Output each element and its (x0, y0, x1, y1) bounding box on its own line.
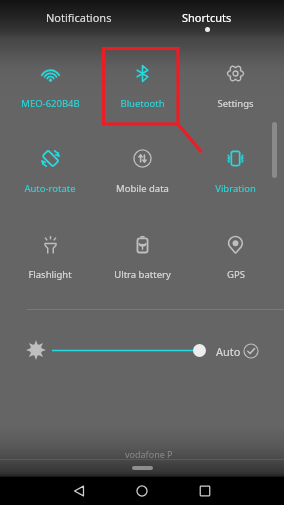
staticText: vodafone P (125, 448, 173, 460)
staticText: Auto-rotate (24, 182, 76, 195)
staticText: GPS (227, 268, 245, 281)
button[interactable]: Shortcuts (142, 0, 271, 40)
button[interactable]: Ultra battery (98, 228, 186, 290)
button[interactable]: GPS (191, 228, 279, 290)
button[interactable]: Settings (191, 57, 279, 119)
staticText: Mobile data (116, 182, 169, 195)
button[interactable]: Home (128, 477, 156, 505)
staticText: Notifications (46, 10, 112, 25)
button[interactable]: MEO-620B4B (6, 57, 94, 119)
staticText: Flashlight (28, 268, 72, 281)
staticText: Ultra battery (114, 268, 171, 281)
staticText: Auto (216, 344, 241, 359)
staticText: Bluetooth (120, 97, 165, 110)
button[interactable]: Notifications (14, 0, 144, 40)
button[interactable]: Vibration (191, 142, 279, 204)
button[interactable]: Recent apps (191, 477, 219, 505)
staticText: Settings (217, 97, 254, 110)
button[interactable]: Mobile data (98, 142, 186, 204)
staticText: MEO-620B4B (21, 97, 80, 110)
staticText: Shortcuts (182, 10, 232, 25)
button[interactable]: Bluetooth (98, 57, 186, 119)
button[interactable]: Flashlight (6, 228, 94, 290)
staticText: Vibration (215, 182, 256, 195)
button[interactable]: Back (65, 477, 93, 505)
button[interactable]: Auto-rotate (6, 142, 94, 204)
